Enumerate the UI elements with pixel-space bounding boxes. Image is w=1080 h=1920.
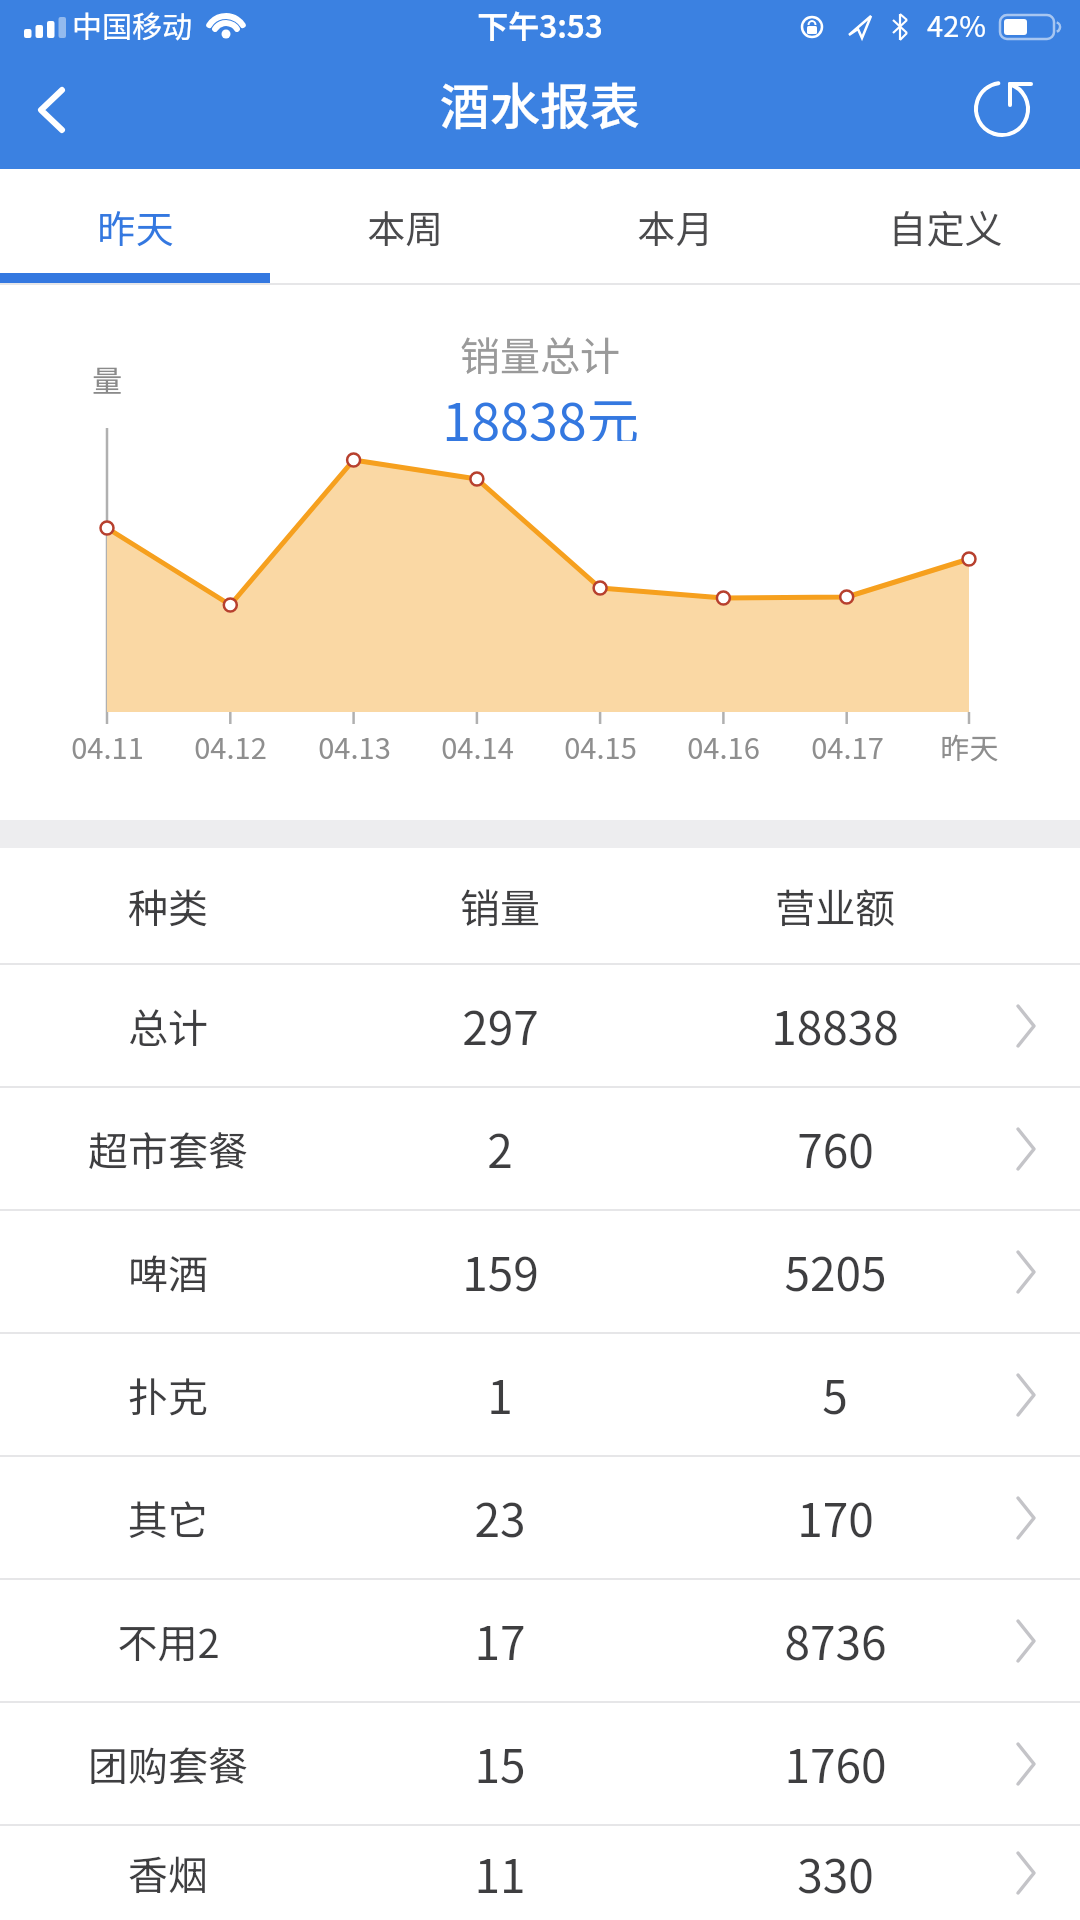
staticText: 330 bbox=[797, 1840, 874, 1907]
staticText: 自定义 bbox=[888, 199, 1003, 254]
staticText: 297 bbox=[462, 992, 539, 1059]
staticText: 下午3:53 bbox=[477, 2, 603, 47]
staticText: 昨天 bbox=[97, 199, 174, 254]
staticText: 04.16 bbox=[687, 725, 760, 765]
button[interactable]: 超市套餐 bbox=[0, 1088, 1080, 1209]
staticText: 团购套餐 bbox=[88, 1735, 248, 1793]
staticText: 11 bbox=[474, 1840, 526, 1907]
staticText: 不用2 bbox=[117, 1612, 220, 1670]
button[interactable]: 其它 bbox=[0, 1457, 1080, 1578]
button[interactable]: 团购套餐 bbox=[0, 1703, 1080, 1824]
staticText: 04.17 bbox=[811, 725, 884, 765]
button[interactable]: 啤酒 bbox=[0, 1211, 1080, 1332]
staticText: 18838元 bbox=[442, 381, 639, 441]
staticText: 04.15 bbox=[564, 725, 637, 765]
staticText: 酒水报表 bbox=[440, 67, 640, 139]
staticText: 04.12 bbox=[194, 725, 267, 765]
staticText: 5 bbox=[822, 1361, 848, 1428]
button[interactable]: 昨天 bbox=[0, 169, 270, 283]
staticText: 本周 bbox=[367, 199, 444, 254]
staticText: 2 bbox=[487, 1115, 513, 1182]
staticText: 23 bbox=[474, 1484, 526, 1551]
button[interactable]: 自定义 bbox=[810, 169, 1080, 283]
staticText: 04.11 bbox=[71, 725, 144, 765]
staticText: 香烟 bbox=[128, 1844, 208, 1902]
staticText: 销量总计 bbox=[460, 325, 620, 375]
staticText: 159 bbox=[462, 1238, 539, 1305]
staticText: 昨天 bbox=[940, 725, 999, 765]
staticText: 量 bbox=[92, 357, 122, 397]
button[interactable]: 本周 bbox=[270, 169, 540, 283]
staticText: 18838 bbox=[771, 992, 899, 1059]
staticText: 04.13 bbox=[318, 725, 391, 765]
staticText: 其它 bbox=[128, 1489, 208, 1547]
button[interactable]: 不用2 bbox=[0, 1580, 1080, 1701]
staticText: 760 bbox=[797, 1115, 874, 1182]
button[interactable]: 香烟 bbox=[0, 1826, 1080, 1920]
staticText: 5205 bbox=[784, 1238, 887, 1305]
staticText: 本月 bbox=[637, 199, 714, 254]
staticText: 170 bbox=[797, 1484, 874, 1551]
button[interactable]: 扑克 bbox=[0, 1334, 1080, 1455]
staticText: 营业额 bbox=[775, 877, 895, 935]
button[interactable] bbox=[20, 75, 90, 145]
staticText: 总计 bbox=[128, 997, 208, 1055]
staticText: 17 bbox=[474, 1607, 526, 1674]
staticText: 扑克 bbox=[128, 1366, 208, 1424]
staticText: 42% bbox=[927, 3, 986, 45]
button[interactable]: 总计 bbox=[0, 965, 1080, 1086]
staticText: 15 bbox=[474, 1730, 526, 1797]
staticText: 啤酒 bbox=[128, 1243, 208, 1301]
staticText: 8736 bbox=[784, 1607, 887, 1674]
staticText: 1 bbox=[487, 1361, 513, 1428]
staticText: 种类 bbox=[128, 877, 208, 935]
staticText: 销量 bbox=[460, 877, 540, 935]
staticText: 超市套餐 bbox=[88, 1120, 248, 1178]
staticText: 04.14 bbox=[441, 725, 514, 765]
staticText: 1760 bbox=[784, 1730, 887, 1797]
button[interactable] bbox=[968, 75, 1038, 145]
staticText: 中国移动 bbox=[72, 3, 192, 46]
button[interactable]: 本月 bbox=[540, 169, 810, 283]
